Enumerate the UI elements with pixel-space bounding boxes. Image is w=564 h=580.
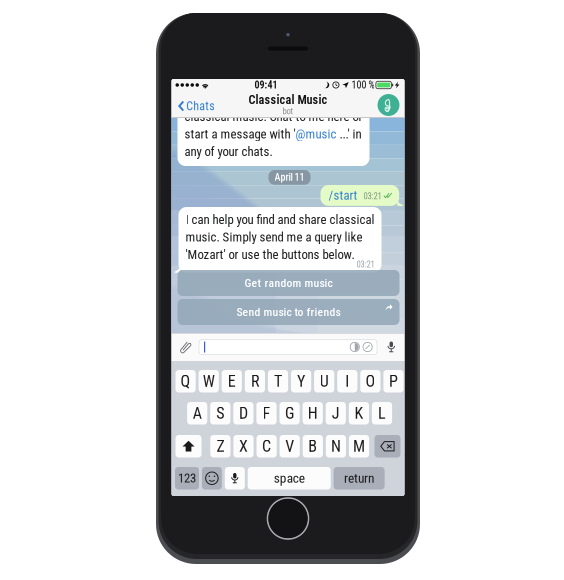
button[interactable]: Chat info: [376, 93, 400, 117]
staticText: 03:21: [363, 191, 381, 201]
staticText: T: [274, 372, 282, 391]
button[interactable]: W: [199, 370, 219, 392]
button[interactable]: 123: [175, 467, 199, 489]
button[interactable]: Dictation: [225, 467, 245, 489]
button[interactable]: D: [233, 402, 253, 424]
button[interactable]: V: [280, 435, 300, 457]
staticText: Chats: [186, 99, 214, 113]
staticText: L: [378, 404, 386, 423]
staticText: bot: [282, 106, 293, 116]
staticText: J: [332, 404, 340, 423]
staticText: 123: [178, 471, 196, 486]
button[interactable]: O: [360, 370, 380, 392]
button[interactable]: Shift: [175, 435, 201, 457]
staticText: X: [239, 437, 248, 456]
button[interactable]: G: [279, 402, 300, 424]
button[interactable]: T: [268, 370, 288, 392]
staticText: F: [262, 404, 270, 423]
button[interactable]: Voice message: [382, 338, 400, 356]
button[interactable]: H: [303, 402, 323, 424]
button[interactable]: E: [222, 370, 242, 392]
button[interactable]: S: [210, 402, 230, 424]
staticText: B: [308, 437, 317, 456]
staticText: 'Mozart' or use the buttons below.: [185, 247, 354, 262]
staticText: any of your chats.: [184, 144, 272, 159]
button[interactable]: I: [337, 370, 357, 392]
staticText: H: [308, 404, 318, 423]
button[interactable]: Send music to friends: [177, 299, 399, 325]
button[interactable]: N: [326, 435, 346, 457]
staticText: E: [228, 372, 236, 391]
button[interactable]: space: [248, 467, 331, 489]
staticText: K: [354, 404, 363, 423]
staticText: April 11: [274, 171, 304, 183]
staticText: classical music. Chat to me here or: [184, 109, 362, 124]
button[interactable]: return: [334, 467, 385, 489]
button[interactable]: R: [245, 370, 265, 392]
button[interactable]: Q: [175, 370, 196, 392]
staticText: R: [251, 372, 259, 391]
staticText: V: [285, 437, 294, 456]
button[interactable]: A: [187, 402, 207, 424]
staticText: D: [239, 404, 248, 423]
button[interactable]: U: [314, 370, 334, 392]
button[interactable]: Get random music: [177, 270, 399, 296]
staticText: 09:41: [254, 79, 277, 91]
button[interactable]: B: [303, 435, 323, 457]
staticText: W: [203, 372, 215, 391]
staticText: O: [365, 372, 375, 391]
staticText: M: [353, 437, 365, 456]
button[interactable]: Delete: [374, 435, 400, 457]
button[interactable]: J: [326, 402, 346, 424]
staticText: C: [262, 437, 271, 456]
staticText: start a message with ': [184, 126, 295, 141]
staticText: @music: [295, 126, 336, 141]
staticText: 100 %: [351, 79, 374, 91]
button[interactable]: P: [383, 370, 404, 392]
staticText: Classical Music: [248, 93, 327, 107]
button[interactable]: K: [349, 402, 369, 424]
staticText: I can help you find and share classical: [185, 212, 374, 227]
button[interactable]: Self-destruct timer: [348, 342, 361, 352]
button[interactable]: Chats: [173, 93, 219, 119]
button[interactable]: M: [349, 435, 369, 457]
staticText: N: [331, 437, 341, 456]
staticText: /start: [328, 188, 357, 203]
staticText: Y: [297, 372, 305, 391]
staticText: ...' in: [336, 126, 361, 141]
staticText: Send music to friends: [236, 305, 340, 319]
button[interactable]: Y: [291, 370, 311, 392]
staticText: Z: [216, 437, 224, 456]
button[interactable]: Stickers: [361, 342, 374, 352]
staticText: Get random music: [244, 276, 332, 290]
staticText: S: [216, 404, 224, 423]
staticText: A: [193, 404, 202, 423]
button[interactable]: Z: [210, 435, 230, 457]
staticText: 03:21: [356, 259, 374, 269]
staticText: P: [389, 372, 398, 391]
button[interactable]: Attach: [175, 337, 196, 357]
staticText: I: [345, 372, 349, 391]
staticText: G: [285, 404, 294, 423]
button[interactable]: X: [233, 435, 254, 457]
staticText: Q: [181, 372, 191, 391]
button[interactable]: F: [256, 402, 277, 424]
staticText: space: [274, 470, 305, 486]
staticText: music. Simply send me a query like: [185, 229, 362, 244]
button[interactable]: L: [372, 402, 392, 424]
button[interactable]: C: [256, 435, 277, 457]
staticText: U: [320, 372, 329, 391]
staticText: return: [344, 470, 374, 486]
button[interactable]: Emoji keyboard: [202, 467, 222, 489]
